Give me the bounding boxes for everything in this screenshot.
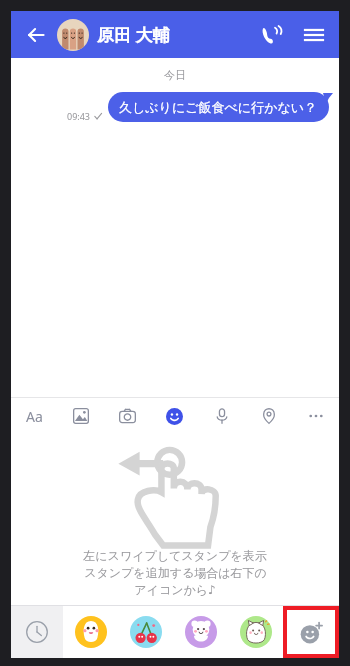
button[interactable]: Location <box>245 398 292 434</box>
button[interactable]: Recently used <box>11 606 63 658</box>
button[interactable]: Sticker pack 2 <box>118 606 173 658</box>
staticText: 左にスワイプしてスタンプを表示 <box>83 548 267 563</box>
button[interactable]: Sticker pack 3 <box>173 606 228 658</box>
staticText: 今日 <box>164 68 186 82</box>
button[interactable]: 久しぶりにご飯食べに行かない？ <box>108 92 329 122</box>
staticText: Aa <box>26 407 43 426</box>
button[interactable]: Photo <box>57 398 104 434</box>
button[interactable]: Text style <box>11 398 57 434</box>
button[interactable]: 原田 大輔 <box>97 23 170 46</box>
button[interactable]: Sticker pack 4 <box>228 606 283 658</box>
button[interactable]: Call <box>253 18 287 52</box>
button[interactable]: More <box>292 398 339 434</box>
button[interactable]: Camera <box>104 398 151 434</box>
button[interactable]: Menu <box>297 18 331 52</box>
staticText: 09:43 <box>67 110 91 122</box>
button[interactable]: Add stickers <box>287 610 335 654</box>
button[interactable]: Sticker pack 1 <box>63 606 118 658</box>
button[interactable]: Voice <box>198 398 245 434</box>
staticText: スタンプを追加する場合は右下の <box>84 565 267 580</box>
button[interactable]: Back <box>21 20 51 50</box>
button[interactable]: Stickers <box>151 398 198 434</box>
staticText: アイコンから♪ <box>134 582 216 597</box>
button[interactable]: Profile photo <box>57 19 89 51</box>
staticText: 久しぶりにご飯食べに行かない？ <box>119 99 318 115</box>
